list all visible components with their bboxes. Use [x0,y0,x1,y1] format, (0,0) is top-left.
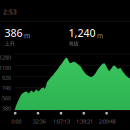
staticText: 920 [2,74,11,81]
staticText: 380 [2,105,11,112]
staticText: 1:07:13 [53,118,70,125]
staticText: 2:09:48 [99,118,116,125]
staticText: 1,240 [68,26,95,40]
staticText: 32:36 [33,118,46,125]
staticText: 740 [2,84,11,92]
staticText: m [97,31,103,40]
staticText: 560 [2,95,11,102]
staticText: 1:39:21 [76,118,93,125]
staticText: 海拔 [68,41,78,47]
staticText: m [24,31,30,40]
staticText: 2:53 [3,7,17,16]
staticText: 上升 [4,41,14,47]
staticText: 1100 [0,64,11,71]
staticText: 0:00 [11,118,21,125]
staticText: 386 [4,26,22,40]
staticText: 1280 [0,54,11,61]
